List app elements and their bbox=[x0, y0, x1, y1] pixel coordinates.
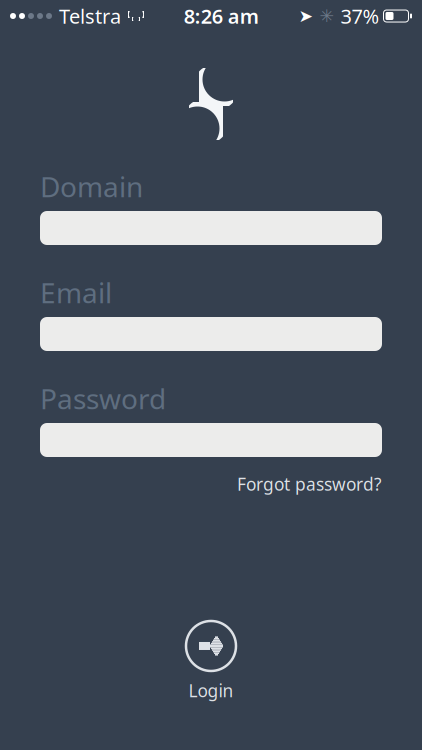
staticText: 8:26 am bbox=[184, 3, 259, 29]
staticText: ➤ bbox=[298, 6, 313, 26]
staticText: Forgot password? bbox=[237, 472, 382, 495]
staticText: ✳ bbox=[319, 6, 334, 26]
staticText: 37% bbox=[340, 3, 379, 29]
button[interactable] bbox=[40, 317, 382, 351]
button[interactable]: Forgot password? bbox=[40, 469, 382, 499]
button[interactable] bbox=[40, 211, 382, 245]
staticText: Domain bbox=[40, 168, 143, 205]
staticText: Email bbox=[40, 274, 112, 311]
staticText: Login bbox=[188, 679, 233, 702]
staticText: Telstra bbox=[59, 3, 121, 29]
button[interactable]: Login bbox=[166, 621, 256, 702]
staticText: Password bbox=[40, 380, 166, 417]
button[interactable] bbox=[40, 423, 382, 457]
